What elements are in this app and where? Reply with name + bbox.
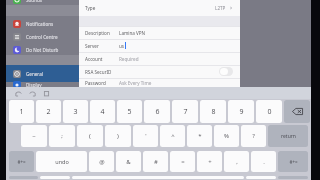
button[interactable]: Do Not Disturb bbox=[6, 44, 79, 55]
staticText: & bbox=[126, 158, 131, 166]
button[interactable]: . bbox=[251, 151, 276, 172]
button[interactable]: Display bbox=[6, 81, 79, 88]
button[interactable]: Server bbox=[79, 39, 240, 52]
button[interactable]: Control Centre bbox=[6, 30, 79, 44]
staticText: RSA SecurID bbox=[85, 69, 112, 75]
button[interactable]: ' bbox=[133, 125, 158, 147]
button[interactable]: ~ bbox=[21, 125, 47, 147]
button[interactable]: & bbox=[116, 151, 141, 172]
staticText: 1 bbox=[19, 107, 24, 117]
button[interactable]: 7 bbox=[172, 100, 198, 123]
button[interactable]: , bbox=[224, 151, 249, 172]
button[interactable]: undo bbox=[36, 151, 87, 172]
button[interactable]: @ bbox=[89, 151, 114, 172]
staticText: Display bbox=[26, 82, 42, 88]
button[interactable]: 8 bbox=[200, 100, 226, 123]
staticText: 9 bbox=[239, 107, 244, 117]
staticText: Ask Every Time bbox=[119, 80, 152, 86]
button[interactable]: * bbox=[187, 125, 212, 147]
button[interactable]: Notifications bbox=[6, 17, 79, 31]
staticText: Type bbox=[85, 5, 96, 11]
staticText: Notifications bbox=[26, 21, 54, 27]
button[interactable]: Description bbox=[79, 26, 240, 39]
staticText: , bbox=[236, 158, 238, 166]
staticText: 8 bbox=[211, 107, 216, 117]
button[interactable]: 4 bbox=[90, 100, 115, 123]
button[interactable]: = bbox=[170, 151, 195, 172]
staticText: us bbox=[119, 43, 125, 49]
staticText: Control Centre bbox=[26, 34, 58, 40]
button[interactable]: Password bbox=[79, 78, 240, 88]
staticText: Do Not Disturb bbox=[26, 47, 59, 53]
button[interactable]: RSA SecurID bbox=[79, 65, 240, 78]
staticText: 6 bbox=[155, 107, 160, 117]
button[interactable]: 0 bbox=[256, 100, 282, 123]
button[interactable]: Account bbox=[79, 52, 240, 66]
staticText: + bbox=[208, 158, 212, 166]
button[interactable]: 3 bbox=[63, 100, 88, 123]
staticText: * bbox=[198, 132, 202, 140]
button[interactable]: ) bbox=[105, 125, 131, 147]
staticText: L2TP bbox=[215, 5, 226, 11]
staticText: ) bbox=[117, 132, 119, 140]
staticText: % bbox=[224, 132, 229, 140]
staticText: undo bbox=[55, 158, 69, 165]
button[interactable]: ( bbox=[77, 125, 103, 147]
staticText: ( bbox=[89, 132, 91, 140]
staticText: ^ bbox=[171, 132, 175, 140]
button[interactable]: Sounds bbox=[6, 0, 79, 6]
staticText: Server bbox=[85, 43, 99, 49]
button[interactable]: 1 bbox=[9, 100, 34, 123]
button[interactable]: Paste bbox=[43, 90, 50, 97]
staticText: @ bbox=[99, 158, 105, 166]
staticText: ? bbox=[252, 132, 255, 140]
button[interactable]: ? bbox=[241, 125, 266, 147]
staticText: #+= bbox=[17, 159, 26, 165]
button[interactable]: # bbox=[143, 151, 168, 172]
button[interactable] bbox=[246, 176, 276, 179]
staticText: ' bbox=[145, 132, 147, 140]
staticText: ; bbox=[61, 132, 63, 140]
staticText: 5 bbox=[127, 107, 132, 117]
button[interactable]: ; bbox=[49, 125, 75, 147]
staticText: Password bbox=[85, 80, 106, 86]
button[interactable]: General bbox=[6, 65, 79, 82]
staticText: # bbox=[154, 158, 158, 166]
button[interactable]: #+= bbox=[278, 151, 308, 172]
button[interactable]: Backspace bbox=[284, 100, 310, 123]
staticText: ~ bbox=[32, 132, 36, 140]
staticText: 2 bbox=[46, 107, 51, 117]
staticText: 0 bbox=[267, 107, 272, 117]
button[interactable]: Undo bbox=[15, 90, 22, 97]
staticText: Lamina VPN bbox=[119, 30, 146, 36]
button[interactable]: 5 bbox=[117, 100, 142, 123]
staticText: . bbox=[263, 158, 265, 166]
button[interactable]: 2 bbox=[36, 100, 61, 123]
button[interactable]: #+= bbox=[9, 151, 34, 172]
button[interactable]: Redo bbox=[29, 90, 36, 97]
staticText: 7 bbox=[183, 107, 188, 117]
staticText: = bbox=[181, 158, 185, 166]
staticText: 4 bbox=[100, 107, 105, 117]
staticText: #+= bbox=[289, 159, 298, 165]
button[interactable]: % bbox=[214, 125, 239, 147]
staticText: Description bbox=[85, 30, 110, 36]
button[interactable]: 6 bbox=[144, 100, 170, 123]
button[interactable]: Type bbox=[79, 0, 240, 16]
staticText: Account bbox=[85, 56, 103, 62]
button[interactable]: + bbox=[197, 151, 222, 172]
staticText: Required bbox=[119, 56, 139, 62]
staticText: Sounds bbox=[26, 0, 43, 3]
button[interactable] bbox=[40, 176, 70, 179]
button[interactable]: ^ bbox=[160, 125, 185, 147]
staticText: return bbox=[281, 133, 296, 140]
staticText: General bbox=[26, 71, 43, 77]
staticText: 3 bbox=[73, 107, 78, 117]
button[interactable]: 9 bbox=[228, 100, 254, 123]
button[interactable]: return bbox=[268, 125, 308, 147]
